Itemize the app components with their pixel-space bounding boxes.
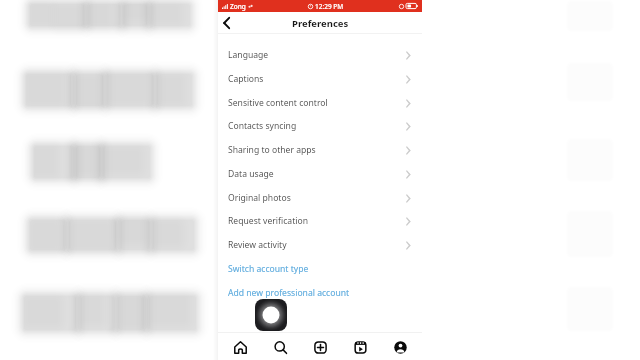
- button[interactable]: Screen record: [255, 299, 287, 331]
- button[interactable]: Reels: [348, 335, 372, 359]
- staticText: Sensitive content control: [228, 97, 328, 109]
- staticText: Captions: [228, 73, 264, 85]
- staticText: Sharing to other apps: [228, 144, 316, 156]
- button[interactable]: Request verification: [218, 209, 422, 233]
- staticText: Preferences: [292, 17, 349, 30]
- button[interactable]: Language: [218, 43, 422, 67]
- button[interactable]: Profile: [388, 335, 412, 359]
- button[interactable]: Create: [308, 335, 332, 359]
- staticText: Add new professional account: [228, 287, 350, 299]
- button[interactable]: Data usage: [218, 162, 422, 186]
- staticText: Original photos: [228, 192, 291, 204]
- staticText: Contacts syncing: [228, 120, 297, 132]
- staticText: 12:29 PM: [315, 2, 344, 11]
- button[interactable]: Original photos: [218, 186, 422, 210]
- button[interactable]: Captions: [218, 67, 422, 91]
- staticText: Language: [228, 49, 269, 61]
- button[interactable]: Review activity: [218, 233, 422, 257]
- button[interactable]: Sensitive content control: [218, 91, 422, 115]
- button[interactable]: Sharing to other apps: [218, 138, 422, 162]
- button[interactable]: Home: [228, 335, 252, 359]
- button[interactable]: Back: [218, 13, 236, 33]
- button[interactable]: Search: [268, 335, 292, 359]
- staticText: Review activity: [228, 239, 287, 251]
- staticText: Request verification: [228, 215, 309, 227]
- button[interactable]: Add new professional account: [218, 281, 422, 305]
- button[interactable]: Contacts syncing: [218, 114, 422, 138]
- staticText: Data usage: [228, 168, 274, 180]
- staticText: Switch account type: [228, 263, 309, 275]
- button[interactable]: Switch account type: [218, 257, 422, 281]
- staticText: Zong: [230, 2, 246, 11]
